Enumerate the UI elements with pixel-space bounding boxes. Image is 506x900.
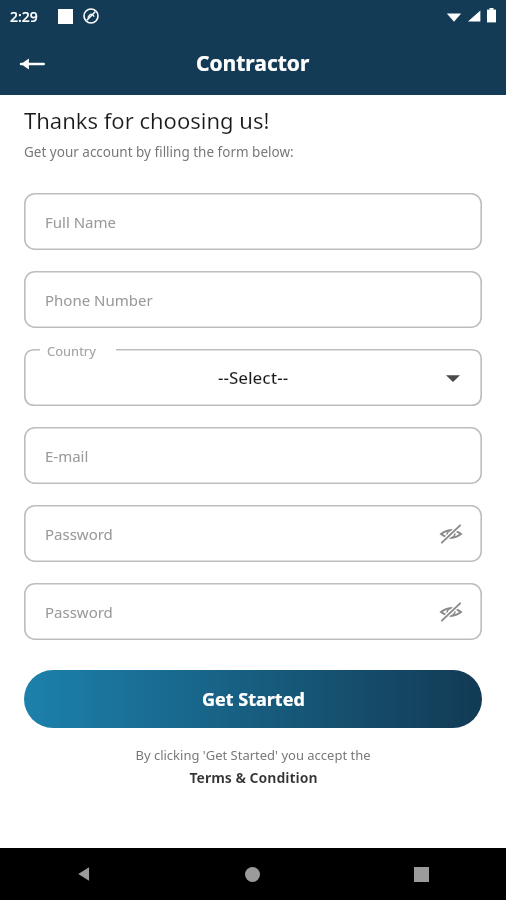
button[interactable]: Get Started	[24, 670, 482, 728]
staticText: 2:29	[10, 7, 38, 26]
staticText: Phone Number	[45, 290, 153, 310]
button[interactable]: Password	[24, 583, 482, 640]
staticText: Contractor	[196, 49, 310, 78]
button[interactable]: Country	[24, 349, 482, 406]
button[interactable]: Toggle password visibility	[434, 517, 468, 551]
button[interactable]: Back	[8, 40, 56, 88]
staticText: Get your account by filling the form bel…	[24, 143, 294, 161]
button[interactable]: Terms & Condition	[189, 768, 318, 787]
staticText: By clicking 'Get Started' you accept the	[135, 746, 371, 764]
staticText: Password	[45, 524, 113, 544]
staticText: Country	[47, 342, 96, 360]
button[interactable]: Home	[168, 848, 337, 900]
staticText: Thanks for choosing us!	[24, 105, 270, 135]
button[interactable]: Password	[24, 505, 482, 562]
staticText: Password	[45, 602, 113, 622]
button[interactable]: Back	[0, 848, 168, 900]
button[interactable]: Recent apps	[337, 848, 506, 900]
staticText: Terms & Condition	[189, 768, 318, 787]
other: Open country dropdown	[438, 363, 468, 393]
staticText: Full Name	[45, 212, 116, 232]
button[interactable]: Full Name	[24, 193, 482, 250]
button[interactable]: Phone Number	[24, 271, 482, 328]
button[interactable]: Toggle password visibility	[434, 595, 468, 629]
staticText: --Select--	[218, 366, 289, 389]
staticText: E-mail	[45, 446, 89, 466]
button[interactable]: E-mail	[24, 427, 482, 484]
staticText: Get Started	[202, 687, 305, 712]
